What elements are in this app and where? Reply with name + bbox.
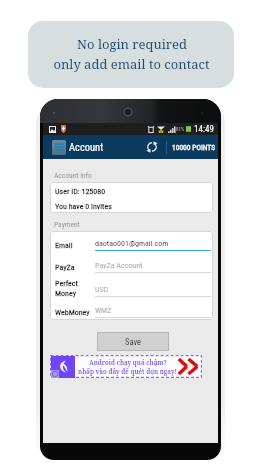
- staticText: Android chạy quá chậm?: [89, 358, 167, 366]
- staticText: User ID: 125080: [55, 187, 106, 196]
- staticText: Account Info: [54, 171, 92, 180]
- staticText: only add email to contact: [53, 55, 210, 73]
- staticText: PayZa Account: [95, 261, 143, 270]
- staticText: 10000 POINTS: [172, 143, 216, 152]
- staticText: No login required: [77, 35, 187, 53]
- staticText: USD: [95, 285, 109, 294]
- other: Open navigation drawer: [52, 140, 66, 155]
- staticText: 81%: [176, 126, 185, 132]
- button[interactable]: Save: [97, 332, 169, 351]
- staticText: PayZa: [55, 263, 75, 272]
- button[interactable]: Refresh: [145, 140, 159, 154]
- staticText: You have 0 invites: [55, 202, 112, 211]
- staticText: WMZ: [95, 306, 112, 315]
- button[interactable]: Advertisement: Android is slow, tap to c…: [50, 355, 202, 378]
- staticText: Perfect Money: [55, 279, 78, 297]
- staticText: daotao001@gmail.com: [95, 239, 169, 248]
- staticText: nhấp vào đây để quét dọn ngay!: [78, 367, 177, 375]
- button[interactable]: User ID: 125080: [50, 182, 213, 213]
- staticText: 14:49: [194, 124, 214, 135]
- button[interactable]: Open navigation drawer: [52, 135, 104, 159]
- staticText: Email: [55, 241, 73, 250]
- staticText: WebMoney: [55, 308, 90, 317]
- staticText: Save: [125, 337, 141, 347]
- staticText: Payment: [54, 220, 80, 229]
- staticText: Account: [69, 141, 104, 153]
- button[interactable]: 10000 POINTS: [172, 143, 216, 152]
